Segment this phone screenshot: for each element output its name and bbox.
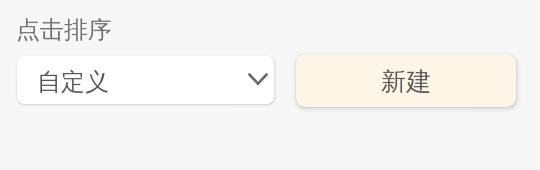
button[interactable]: 新建 [296, 54, 516, 107]
button[interactable]: Sort order: 自定义 [17, 56, 274, 104]
staticText: 新建 [381, 66, 431, 97]
staticText: 点击排序 [16, 15, 112, 45]
staticText: 自定义 [37, 67, 109, 97]
